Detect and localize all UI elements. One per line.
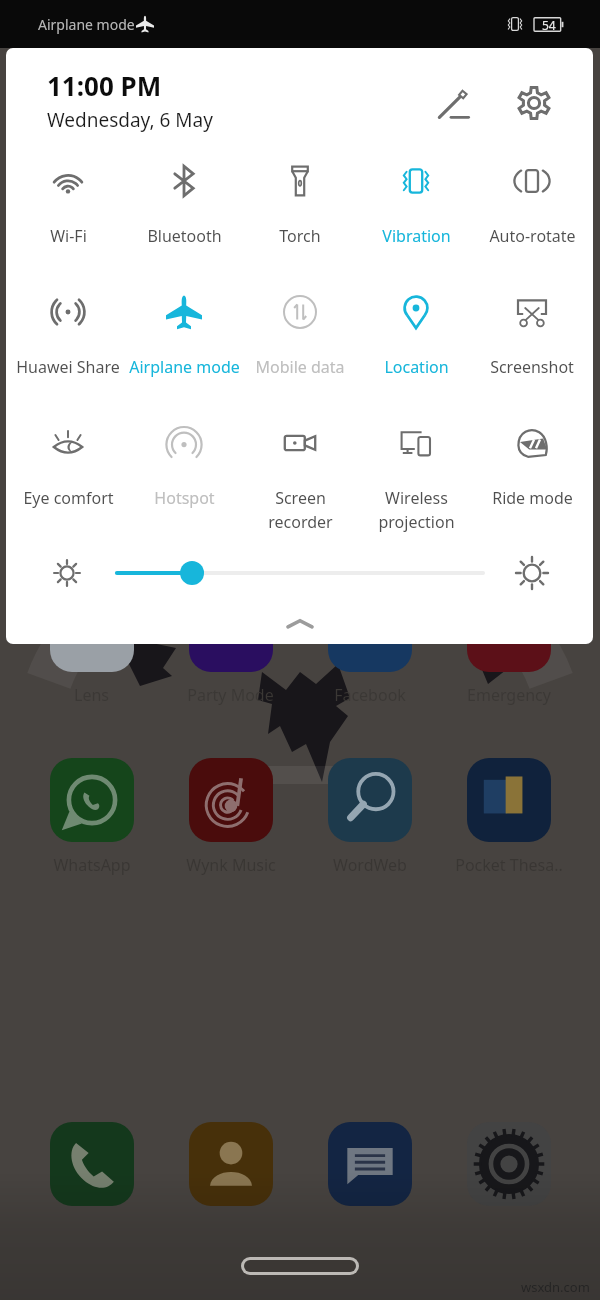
button[interactable]: Pocket Thesa..	[439, 758, 578, 876]
staticText: Screen recorder	[268, 487, 333, 533]
button[interactable]: Screen recorder	[242, 412, 358, 543]
button[interactable]: High brightness	[506, 549, 558, 597]
button[interactable]: Location	[358, 281, 474, 412]
staticText: 11:00 PM	[47, 68, 162, 103]
button[interactable]: Mobile data	[242, 281, 358, 412]
staticText: Hotspot	[154, 487, 215, 509]
button[interactable]: Facebook	[300, 588, 439, 706]
button[interactable]: Wynk Music	[161, 758, 300, 876]
button[interactable]: Phone	[50, 1122, 134, 1206]
staticText: Wi-Fi	[50, 225, 87, 247]
button[interactable]: Brightness slider	[117, 551, 483, 595]
staticText: Pocket Thesa..	[455, 854, 563, 876]
button[interactable]: Emergency	[439, 588, 578, 706]
staticText: Emergency	[467, 684, 551, 706]
staticText: Lens	[74, 684, 109, 706]
button[interactable]: Collapse	[265, 606, 335, 642]
button[interactable]: Settings	[508, 77, 560, 129]
staticText: Screenshot	[490, 356, 574, 378]
staticText: Airplane mode	[129, 356, 240, 378]
staticText: Party Mode	[187, 684, 274, 706]
button[interactable]: Wireless projection	[358, 412, 474, 543]
staticText: Vibration	[382, 225, 451, 247]
button[interactable]: Torch	[242, 150, 358, 281]
button[interactable]: Auto-rotate	[474, 150, 590, 281]
staticText: WordWeb	[333, 854, 407, 876]
staticText: Ride mode	[492, 487, 573, 509]
button[interactable]: Party Mode	[161, 588, 300, 706]
staticText: Wednesday, 6 May	[47, 107, 213, 133]
staticText: Torch	[279, 225, 321, 247]
button[interactable]: WhatsApp	[22, 758, 161, 876]
button[interactable]: Settings	[467, 1122, 551, 1206]
button[interactable]: Wi-Fi	[10, 150, 126, 281]
staticText: Airplane mode	[38, 15, 135, 34]
button[interactable]: Messages	[328, 1122, 412, 1206]
staticText: Facebook	[334, 684, 406, 706]
button[interactable]: Edit	[427, 77, 479, 129]
button[interactable]: Eye comfort	[10, 412, 126, 543]
button[interactable]: Lens	[22, 588, 161, 706]
staticText: 54	[542, 17, 556, 33]
staticText: Auto-rotate	[489, 225, 576, 247]
staticText: Mobile data	[255, 356, 345, 378]
staticText: Eye comfort	[23, 487, 114, 509]
button[interactable]: Screenshot	[474, 281, 590, 412]
staticText: Wireless projection	[378, 487, 455, 533]
staticText: WhatsApp	[53, 854, 131, 876]
staticText: Huawei Share	[16, 356, 120, 378]
button[interactable]: WordWeb	[300, 758, 439, 876]
button[interactable]: Hotspot	[126, 412, 242, 543]
button[interactable]: Contacts	[189, 1122, 273, 1206]
staticText: Wynk Music	[186, 854, 276, 876]
staticText: Location	[384, 356, 449, 378]
button[interactable]: Airplane mode	[126, 281, 242, 412]
button[interactable]: Low brightness	[41, 549, 93, 597]
button[interactable]: Vibration	[358, 150, 474, 281]
button[interactable]: Ride mode	[474, 412, 590, 543]
button[interactable]: Bluetooth	[126, 150, 242, 281]
staticText: Bluetooth	[147, 225, 222, 247]
button[interactable]: Huawei Share	[10, 281, 126, 412]
staticText: wsxdn.com	[521, 1278, 590, 1296]
